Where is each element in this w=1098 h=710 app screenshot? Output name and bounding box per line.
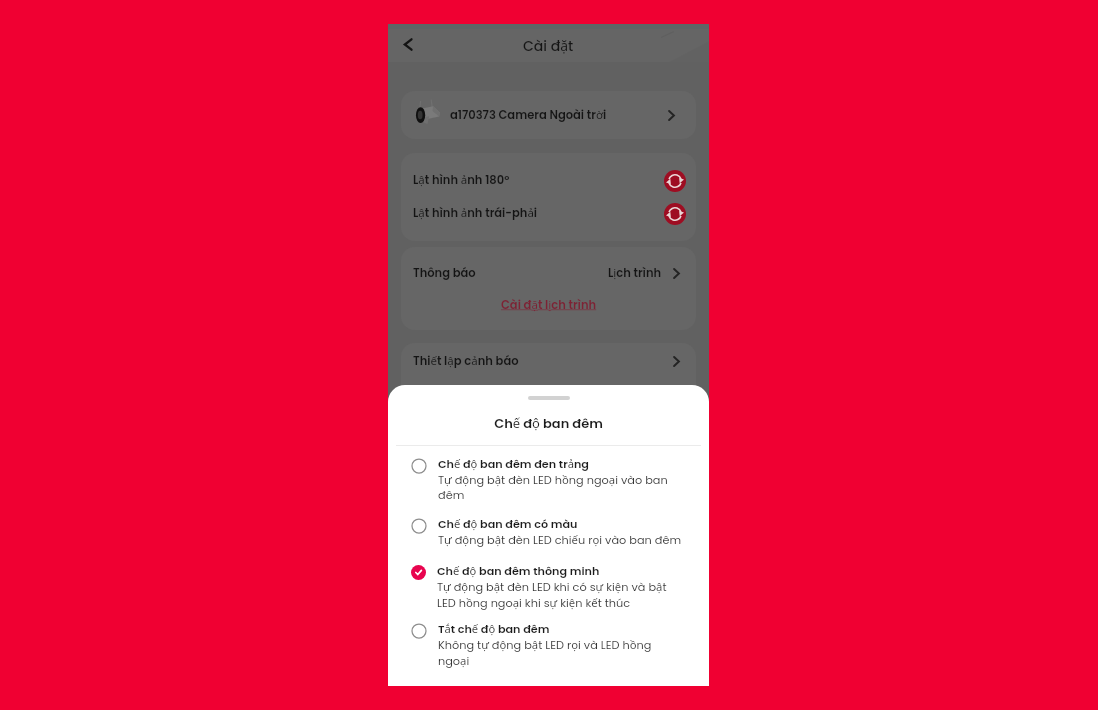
button[interactable]: a170373 Camera Ngoài trời (401, 91, 696, 139)
button[interactable]: Thiết lập cảnh báo (401, 343, 696, 379)
staticText: Tự động bật đèn LED chiếu rọi vào ban đê… (438, 532, 682, 548)
button[interactable]: Chế độ ban đêm có màu (388, 516, 709, 563)
button[interactable]: Chế độ ban đêm thông minh (388, 563, 709, 621)
staticText: Không tự động bật LED rọi và LED hồng ng… (438, 637, 652, 669)
staticText: Tự động bật đèn LED hồng ngoại vào ban đ… (438, 472, 668, 503)
staticText: Lật hình ảnh 180° (413, 172, 510, 188)
staticText: a170373 Camera Ngoài trời (450, 107, 607, 123)
staticText: Tắt chế độ ban đêm (438, 621, 550, 637)
button[interactable]: Lật hình ảnh trái-phải (401, 197, 696, 230)
staticText: Thông báo (413, 265, 476, 281)
staticText: Chế độ ban đêm có màu (438, 516, 578, 532)
button[interactable]: Lật hình ảnh 180° (401, 164, 696, 197)
button[interactable]: Flip image (664, 170, 686, 192)
staticText: Tự động bật đèn LED khi có sự kiện và bậ… (437, 579, 667, 611)
staticText: Chế độ ban đêm đen trảng (438, 456, 589, 472)
button[interactable]: Tắt chế độ ban đêm (388, 621, 709, 669)
button[interactable]: Cài đặt lịch trình (501, 297, 597, 313)
button[interactable]: Chế độ ban đêm đen trảng (388, 456, 709, 516)
button[interactable]: Flip image (664, 203, 686, 225)
staticText: Lịch trình (608, 265, 662, 281)
button[interactable]: Thông báo (401, 247, 696, 299)
staticText: Lật hình ảnh trái-phải (413, 205, 538, 221)
staticText: Cài đặt (523, 36, 574, 56)
staticText: Chế độ ban đêm (388, 414, 709, 432)
button[interactable]: Back (392, 28, 424, 60)
staticText: Thiết lập cảnh báo (413, 353, 519, 369)
staticText: Chế độ ban đêm thông minh (437, 563, 600, 579)
